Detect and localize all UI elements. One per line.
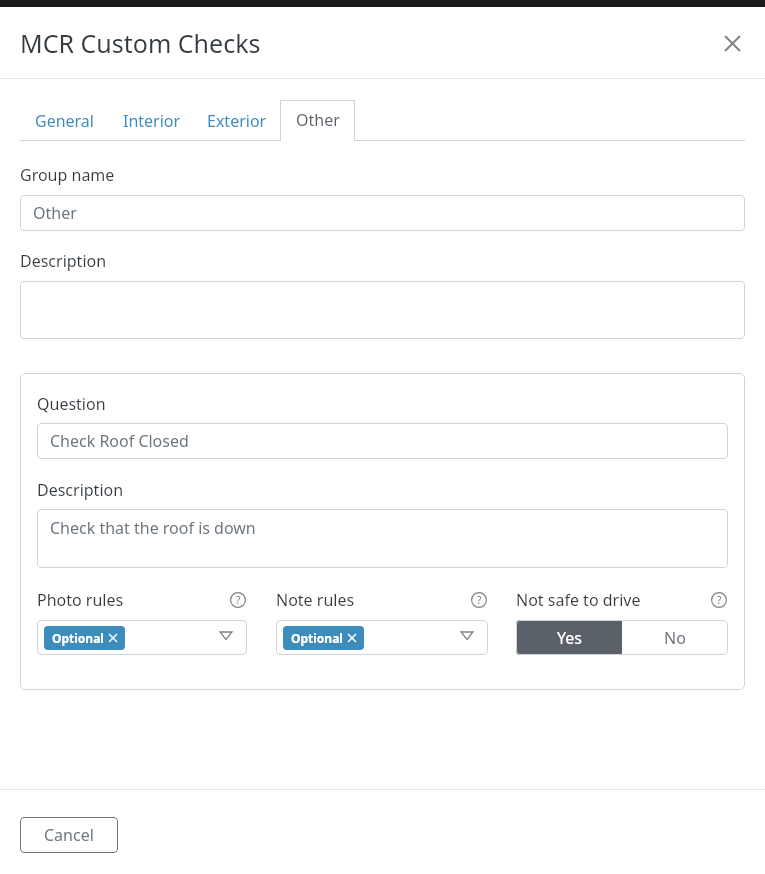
button[interactable]: Optional (276, 620, 488, 655)
staticText: Interior (123, 110, 181, 132)
staticText: Description (37, 479, 124, 501)
staticText: MCR Custom Checks (20, 26, 261, 60)
button[interactable]: Close (719, 30, 745, 56)
button[interactable]: Other (280, 100, 355, 141)
staticText: Check Roof Closed (50, 430, 189, 452)
staticText: Question (37, 393, 106, 415)
button[interactable]: Interior (123, 110, 181, 132)
other: Open dropdown (219, 631, 233, 645)
button[interactable]: Help (229, 591, 247, 609)
staticText: Exterior (207, 110, 267, 132)
staticText: ? (236, 593, 241, 607)
button[interactable]: Optional (37, 620, 247, 655)
staticText: Description (20, 250, 107, 272)
button[interactable]: Help (710, 591, 728, 609)
button[interactable]: Check that the roof is down (37, 509, 728, 568)
button[interactable]: Cancel (20, 817, 118, 853)
staticText: Yes (557, 627, 582, 649)
staticText: ? (717, 593, 722, 607)
button[interactable]: Exterior (207, 110, 267, 132)
staticText: Other (33, 202, 77, 224)
button[interactable]: Optional (291, 626, 356, 650)
staticText: General (35, 110, 94, 132)
staticText: No (664, 627, 686, 649)
staticText: Not safe to drive (516, 589, 641, 611)
staticText: Group name (20, 164, 115, 186)
button[interactable]: Yes (516, 620, 622, 655)
staticText: Check that the roof is down (50, 517, 256, 539)
staticText: Optional (52, 630, 104, 646)
staticText: Note rules (276, 589, 355, 611)
button[interactable]: Other (20, 195, 745, 231)
button[interactable]: No (622, 620, 728, 655)
staticText: Optional (291, 630, 343, 646)
staticText: ? (477, 593, 482, 607)
button[interactable]: Check Roof Closed (37, 423, 728, 459)
button[interactable]: Optional (52, 626, 117, 650)
staticText: Other (296, 109, 340, 131)
button[interactable] (20, 281, 745, 339)
other: Open dropdown (460, 631, 474, 645)
button[interactable]: Help (470, 591, 488, 609)
staticText: Cancel (44, 824, 94, 846)
button[interactable]: General (35, 110, 94, 132)
staticText: Photo rules (37, 589, 124, 611)
